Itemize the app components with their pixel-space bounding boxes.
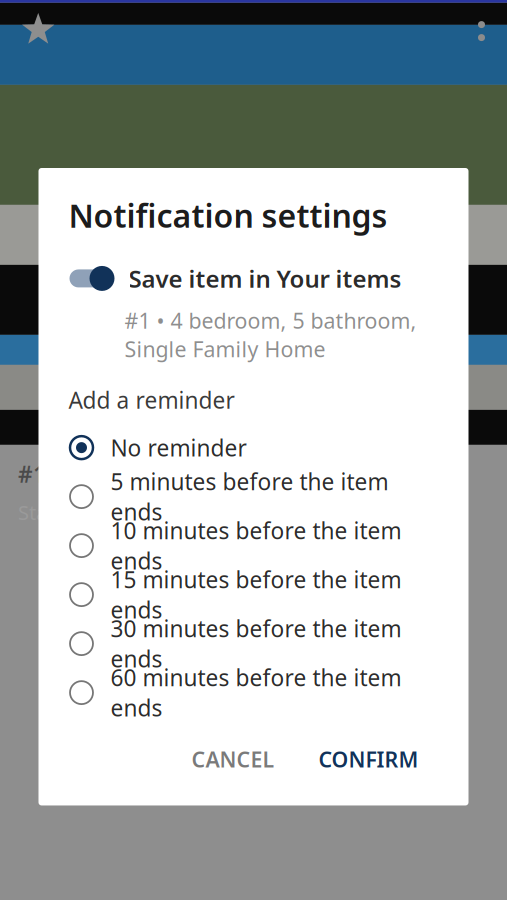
button[interactable]: 5 minutes before the item ends xyxy=(68,472,438,521)
staticText: 15 minutes before the item ends xyxy=(110,564,401,625)
button[interactable]: Save item in Your items xyxy=(68,262,438,294)
staticText: #1 • 4 bedroom, 5 bathroom, Single Famil… xyxy=(124,306,416,363)
staticText: 5 minutes before the item ends xyxy=(110,466,388,527)
staticText: Notification settings xyxy=(68,194,387,236)
staticText: #1... xyxy=(18,459,64,489)
button[interactable]: No reminder xyxy=(68,423,438,472)
staticText: CONFIRM xyxy=(318,745,418,773)
button[interactable]: 15 minutes before the item ends xyxy=(68,570,438,619)
staticText: 30 minutes before the item ends xyxy=(110,613,401,674)
staticText: 10 minutes before the item ends xyxy=(110,515,401,576)
staticText: CANCEL xyxy=(191,745,274,773)
button[interactable]: CANCEL xyxy=(177,735,288,783)
staticText: Save item in Your items xyxy=(128,262,401,294)
staticText: No reminder xyxy=(110,433,246,463)
button[interactable]: 10 minutes before the item ends xyxy=(68,521,438,570)
staticText: Add a reminder xyxy=(68,385,234,415)
button[interactable]: 60 minutes before the item ends xyxy=(68,668,438,717)
button[interactable]: 30 minutes before the item ends xyxy=(68,619,438,668)
staticText: 60 minutes before the item ends xyxy=(110,662,401,723)
staticText: Sta... xyxy=(18,499,62,526)
button[interactable]: CONFIRM xyxy=(304,735,432,783)
